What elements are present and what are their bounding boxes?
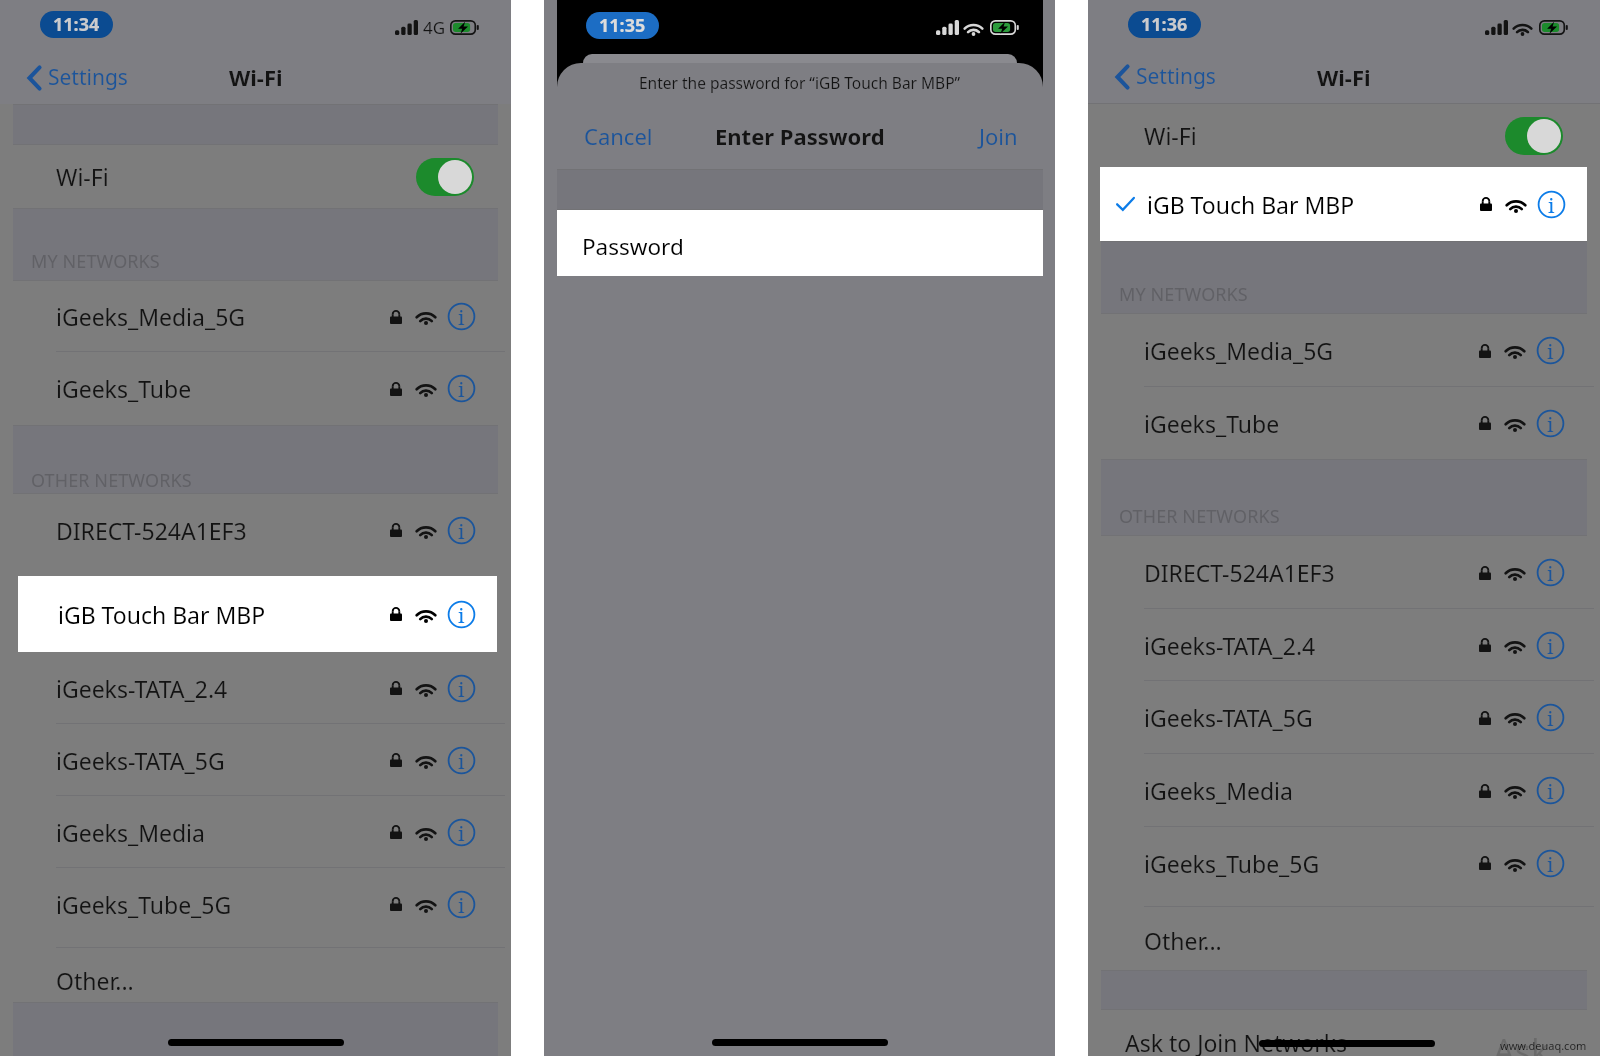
staticText: OTHER NETWORKS — [31, 468, 192, 493]
staticText: OTHER NETWORKS — [1119, 504, 1280, 529]
button[interactable]: iGeeks_Tube — [1088, 387, 1600, 459]
staticText: iGeeks_Media — [56, 817, 205, 848]
button[interactable]: Network information — [447, 516, 476, 545]
other: Secured network — [1479, 711, 1491, 725]
button[interactable]: Network information — [1536, 631, 1565, 660]
button[interactable]: Network information — [1537, 190, 1566, 219]
staticText: Settings — [1136, 62, 1216, 91]
staticText: i — [458, 375, 465, 403]
button[interactable]: Network information — [447, 302, 476, 331]
staticText: iGB Touch Bar MBP — [58, 599, 266, 630]
button[interactable]: Network information — [1536, 849, 1565, 878]
button[interactable]: Back to Settings — [0, 57, 138, 98]
other: Signal strength — [1505, 710, 1525, 725]
button[interactable]: iGeeks-TATA_5G — [1088, 681, 1600, 754]
button[interactable]: Network information — [447, 818, 476, 847]
other: Secured network — [1479, 344, 1491, 358]
other: Signal strength — [416, 681, 436, 696]
other: Signal strength — [1505, 638, 1525, 653]
staticText: i — [458, 819, 465, 847]
button[interactable]: Network information — [1536, 336, 1565, 365]
button[interactable]: Other... — [0, 948, 511, 1002]
staticText: iGeeks_Media — [1144, 775, 1293, 806]
other: Secured network — [390, 607, 402, 621]
button[interactable]: Wi-Fi — [1088, 104, 1600, 167]
other: Secured network — [390, 753, 402, 767]
other: Signal strength — [416, 897, 436, 912]
staticText: i — [1547, 410, 1554, 438]
button[interactable]: Network information — [1536, 703, 1565, 732]
staticText: iGeeks_Tube — [1144, 408, 1280, 439]
button[interactable]: iGeeks-TATA_2.4 — [0, 652, 511, 724]
other: Signal strength — [416, 607, 436, 622]
button[interactable]: Network information — [1536, 776, 1565, 805]
button[interactable]: DIRECT-524A1EF3 — [1088, 536, 1600, 609]
button[interactable]: DIRECT-524A1EF3 — [0, 494, 511, 576]
staticText: Other... — [56, 965, 134, 996]
button[interactable]: Network information — [447, 746, 476, 775]
button[interactable]: iGeeks-TATA_5G — [0, 724, 511, 796]
staticText: Settings — [48, 63, 128, 92]
button[interactable]: iGeeks_Media_5G — [0, 281, 511, 352]
other: Secured network — [1480, 197, 1492, 211]
button[interactable]: iGB Touch Bar MBP — [1100, 167, 1587, 241]
other: Signal strength — [416, 753, 436, 768]
button[interactable]: Network information — [447, 890, 476, 919]
other: Signal strength — [1505, 565, 1525, 580]
staticText: Other... — [1144, 925, 1222, 956]
other: Secured network — [390, 382, 402, 396]
button[interactable]: Network information — [447, 674, 476, 703]
staticText: i — [458, 303, 465, 331]
button[interactable]: Cancel — [557, 113, 665, 159]
button[interactable]: iGB Touch Bar MBP — [18, 576, 497, 652]
button[interactable]: iGeeks_Tube_5G — [1088, 827, 1600, 907]
button[interactable]: Network information — [1536, 409, 1565, 438]
button[interactable]: Wi-Fi toggle — [416, 158, 474, 196]
staticText: iGeeks-TATA_2.4 — [1144, 630, 1316, 661]
staticText: www.deuaq.com — [1500, 1038, 1587, 1053]
button[interactable]: Network information — [447, 600, 476, 629]
button[interactable]: Password — [557, 210, 1043, 276]
other: Secured network — [1479, 856, 1491, 870]
other: Secured network — [390, 681, 402, 695]
staticText: Password — [582, 231, 684, 262]
staticText: 4G — [423, 16, 446, 39]
staticText: DIRECT-524A1EF3 — [56, 515, 247, 546]
staticText: iGeeks_Tube — [56, 373, 192, 404]
button[interactable]: iGeeks_Media_5G — [1088, 314, 1600, 387]
staticText: i — [1547, 850, 1554, 878]
staticText: i — [1547, 777, 1554, 805]
other: Signal strength — [1505, 416, 1525, 431]
button[interactable]: Wi-Fi — [0, 145, 511, 208]
other: Signal strength — [416, 825, 436, 840]
button[interactable]: Join — [967, 113, 1043, 159]
button[interactable]: Network information — [1536, 558, 1565, 587]
other: Signal strength — [1505, 783, 1525, 798]
other: Secured network — [390, 897, 402, 911]
staticText: i — [1547, 337, 1554, 365]
button[interactable]: Network information — [447, 374, 476, 403]
button[interactable]: Wi-Fi toggle — [1505, 117, 1563, 155]
staticText: 11:36 — [1141, 12, 1188, 37]
button[interactable]: iGeeks-TATA_2.4 — [1088, 609, 1600, 681]
button[interactable]: Back to Settings — [1088, 56, 1226, 97]
other: Secured network — [390, 825, 402, 839]
staticText: Ask to Join Networks — [1125, 1027, 1348, 1056]
other: Secured network — [1479, 638, 1491, 652]
button[interactable]: Other... — [1088, 907, 1600, 970]
other: Signal strength — [416, 381, 436, 396]
staticText: i — [458, 517, 465, 545]
button[interactable]: iGeeks_Tube_5G — [0, 868, 511, 948]
staticText: 11:35 — [599, 13, 646, 38]
other: Secured network — [1479, 566, 1491, 580]
button[interactable]: iGeeks_Tube — [0, 352, 511, 425]
button[interactable]: iGeeks_Media — [0, 796, 511, 868]
staticText: 11:34 — [53, 12, 100, 37]
staticText: iGeeks-TATA_5G — [56, 745, 225, 776]
staticText: DIRECT-524A1EF3 — [1144, 557, 1335, 588]
staticText: i — [1548, 191, 1555, 219]
button[interactable]: iGeeks_Media — [1088, 754, 1600, 827]
other: Signal strength — [1505, 856, 1525, 871]
other: Signal strength — [416, 523, 436, 538]
staticText: i — [1547, 704, 1554, 732]
